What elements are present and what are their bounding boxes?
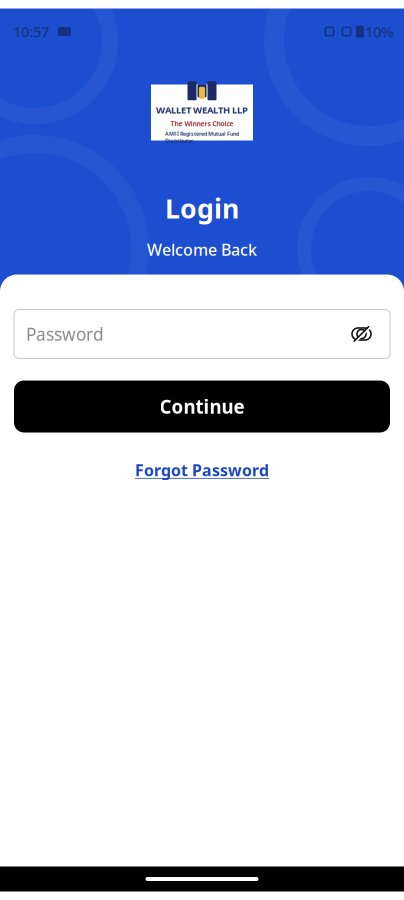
button[interactable]: Forgot Password (125, 454, 279, 486)
staticText: Login (165, 190, 239, 226)
staticText: The Winners Choice (170, 119, 233, 128)
button[interactable]: Password (14, 309, 390, 358)
staticText: Welcome Back (147, 239, 257, 260)
staticText: Continue (159, 394, 244, 419)
staticText: 10% (365, 22, 393, 41)
staticText: 10:57 (13, 22, 49, 41)
staticText: Password (26, 322, 104, 345)
staticText: WALLET WEALTH LLP (156, 104, 248, 116)
staticText: AMFI Registered Mutual Fund Distributor (165, 130, 239, 144)
staticText: Forgot Password (135, 459, 269, 481)
button[interactable]: Continue (14, 380, 390, 432)
